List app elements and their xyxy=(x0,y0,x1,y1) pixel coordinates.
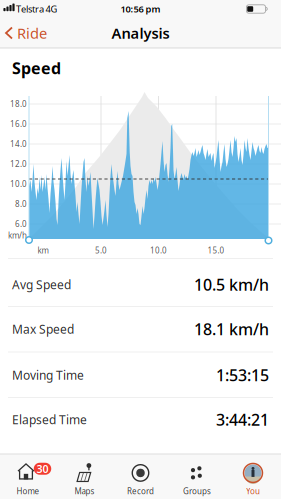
staticText: Maps xyxy=(74,486,94,496)
staticText: Speed xyxy=(12,57,61,79)
staticText: 10.5 km/h xyxy=(194,274,269,295)
button[interactable]: Maps xyxy=(57,458,111,499)
staticText: 12.0 xyxy=(10,159,27,169)
staticText: Max Speed xyxy=(12,321,74,337)
staticText: Analysis xyxy=(111,23,169,43)
staticText: 1:53:15 xyxy=(216,364,269,386)
staticText: 16.0 xyxy=(10,119,27,129)
staticText: km/h xyxy=(8,230,27,241)
staticText: 10.0 xyxy=(150,245,167,256)
staticText: 6.0 xyxy=(15,219,27,229)
button[interactable]: 30 xyxy=(1,458,55,499)
staticText: 14.0 xyxy=(10,139,27,149)
staticText: 10:56 pm xyxy=(120,3,160,15)
staticText: km xyxy=(37,245,48,256)
staticText: Record xyxy=(127,486,154,496)
staticText: 18.0 xyxy=(10,99,27,109)
button[interactable]: Record xyxy=(113,458,167,499)
staticText: 4G xyxy=(45,3,57,15)
staticText: 18.1 km/h xyxy=(194,318,269,340)
staticText: Telstra xyxy=(16,3,44,15)
button[interactable]: Groups xyxy=(170,458,224,499)
staticText: Home xyxy=(16,486,39,496)
staticText: Moving Time xyxy=(12,367,84,383)
staticText: Groups xyxy=(183,486,211,496)
staticText: 8.0 xyxy=(15,199,27,209)
staticText: 10.0 xyxy=(10,179,27,189)
button[interactable]: You xyxy=(226,458,280,499)
staticText: 15.0 xyxy=(207,245,224,256)
staticText: 5.0 xyxy=(95,245,107,256)
staticText: 30 xyxy=(36,462,48,476)
staticText: 3:44:21 xyxy=(216,409,269,430)
staticText: Ride xyxy=(17,23,47,43)
button[interactable]: Ride xyxy=(6,19,54,47)
staticText: You xyxy=(246,486,260,496)
staticText: Avg Speed xyxy=(12,276,71,292)
staticText: Elapsed Time xyxy=(12,411,87,427)
